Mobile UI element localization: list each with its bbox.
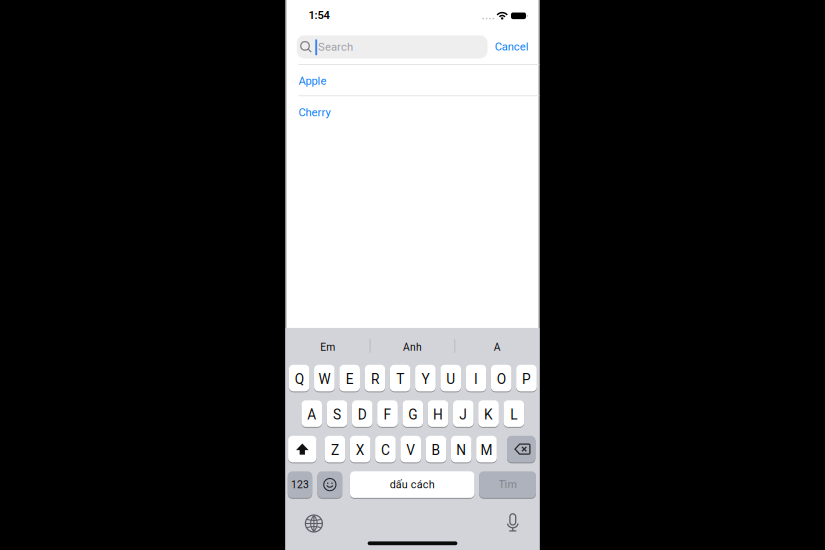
button[interactable]: Cherry: [298, 97, 539, 127]
staticText: A: [307, 407, 316, 423]
staticText: I: [474, 371, 478, 387]
staticText: X: [356, 442, 365, 458]
button[interactable]: Q: [289, 364, 309, 392]
button[interactable]: S: [327, 400, 347, 427]
staticText: S: [333, 407, 341, 423]
staticText: Y: [421, 371, 429, 387]
staticText: Anh: [403, 341, 422, 353]
staticText: P: [522, 371, 531, 387]
staticText: Search: [318, 40, 353, 53]
button[interactable]: Delete: [507, 435, 535, 463]
staticText: B: [431, 442, 440, 458]
staticText: A: [494, 341, 501, 353]
button[interactable]: R: [365, 364, 385, 392]
staticText: J: [459, 407, 467, 423]
button[interactable]: I: [466, 364, 486, 392]
staticText: Em: [320, 341, 335, 353]
button[interactable]: M: [476, 435, 497, 463]
staticText: Apple: [298, 74, 326, 87]
button[interactable]: Dictate: [507, 514, 519, 533]
staticText: Tìm: [499, 478, 517, 491]
button[interactable]: A: [457, 334, 537, 360]
staticText: N: [456, 442, 466, 458]
button[interactable]: V: [400, 435, 421, 463]
button[interactable]: F: [377, 400, 398, 427]
staticText: O: [497, 371, 506, 387]
button[interactable]: B: [426, 435, 446, 463]
button[interactable]: C: [375, 435, 396, 463]
button[interactable]: H: [428, 400, 448, 427]
staticText: F: [383, 407, 391, 423]
button[interactable]: W: [314, 364, 335, 392]
staticText: Q: [295, 371, 304, 387]
button[interactable]: P: [516, 364, 537, 392]
button[interactable]: Apple: [298, 66, 539, 96]
staticText: 1:54: [308, 9, 329, 22]
button[interactable]: J: [453, 400, 474, 427]
staticText: Cherry: [298, 106, 330, 119]
staticText: T: [396, 371, 404, 387]
button[interactable]: Emoji: [317, 471, 342, 498]
button[interactable]: Cancel: [495, 40, 529, 53]
button[interactable]: X: [350, 435, 371, 463]
button[interactable]: dấu cách: [350, 471, 474, 498]
button[interactable]: A: [301, 400, 322, 427]
staticText: dấu cách: [390, 478, 435, 491]
button[interactable]: G: [402, 400, 423, 427]
staticText: V: [406, 442, 415, 458]
staticText: G: [408, 407, 417, 423]
staticText: C: [381, 442, 390, 458]
staticText: Z: [331, 442, 339, 458]
button[interactable]: Shift: [288, 435, 316, 463]
staticText: U: [446, 371, 455, 387]
staticText: R: [371, 371, 379, 387]
button[interactable]: O: [491, 364, 512, 392]
staticText: L: [510, 407, 517, 423]
button[interactable]: Y: [415, 364, 436, 392]
staticText: K: [484, 407, 493, 423]
button[interactable]: L: [503, 400, 524, 427]
staticText: 123: [291, 478, 309, 491]
staticText: E: [346, 371, 354, 387]
button[interactable]: N: [451, 435, 472, 463]
staticText: W: [318, 371, 330, 387]
button[interactable]: K: [478, 400, 499, 427]
staticText: Cancel: [495, 40, 529, 53]
button[interactable]: T: [390, 364, 410, 392]
button[interactable]: E: [339, 364, 360, 392]
button[interactable]: Tìm: [479, 471, 536, 498]
button[interactable]: 123: [288, 471, 312, 498]
button[interactable]: Anh: [372, 334, 452, 360]
staticText: H: [433, 407, 443, 423]
staticText: M: [480, 442, 492, 458]
button[interactable]: Next keyboard: [305, 514, 323, 532]
button[interactable]: U: [440, 364, 461, 392]
button[interactable]: Search: [297, 35, 487, 58]
button[interactable]: Z: [325, 435, 345, 463]
button[interactable]: Em: [288, 334, 368, 360]
staticText: D: [358, 407, 367, 423]
button[interactable]: D: [352, 400, 373, 427]
